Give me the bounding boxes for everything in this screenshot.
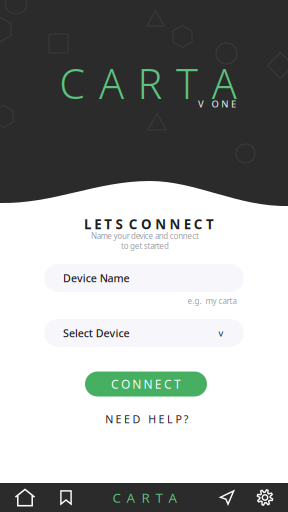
button[interactable]: C A R T A	[100, 485, 190, 509]
staticText: L E T S C O N N E C T	[84, 215, 214, 233]
staticText: e.g. my carta	[187, 296, 236, 306]
staticText: C A R T A	[112, 489, 177, 506]
button[interactable]: Select Device	[44, 319, 244, 347]
button[interactable]: N E E D H E L P ?	[92, 409, 202, 429]
staticText: Device Name	[63, 271, 129, 285]
staticText: Select Device	[63, 326, 129, 340]
staticText: N E E D H E L P ?	[105, 412, 189, 426]
button[interactable]: Send	[212, 483, 242, 512]
staticText: V O N E	[198, 98, 236, 110]
staticText: C A R T A	[59, 56, 237, 110]
staticText: Name your device and connect	[91, 231, 199, 241]
staticText: C O N N E C T	[111, 376, 181, 392]
button[interactable]: Home	[9, 483, 41, 512]
button[interactable]: Bookmarks	[51, 483, 81, 512]
staticText: v	[218, 327, 223, 339]
button[interactable]: Settings	[250, 483, 280, 512]
staticText: to get started	[121, 241, 169, 251]
button[interactable]: C O N N E C T	[85, 371, 207, 396]
